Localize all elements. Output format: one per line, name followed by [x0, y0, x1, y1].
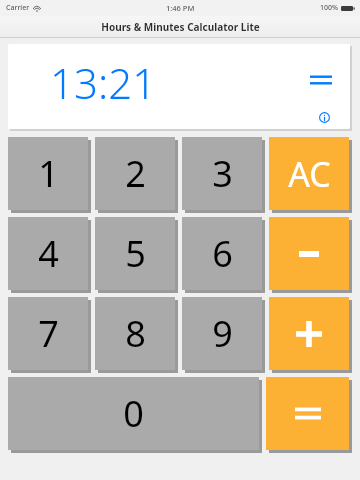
staticText: AC — [288, 151, 331, 197]
staticText: 1:46 PM — [166, 3, 195, 13]
staticText: 0 — [123, 389, 144, 438]
staticText: 9 — [212, 309, 233, 358]
button[interactable]: 2 — [95, 137, 178, 213]
staticText: 13:21 — [50, 54, 157, 111]
button[interactable]: 7 — [8, 297, 91, 373]
button[interactable]: 8 — [95, 297, 178, 373]
staticText: 7 — [38, 309, 59, 358]
button[interactable]: 4 — [8, 217, 91, 293]
staticText: Carrier — [6, 3, 30, 13]
button[interactable] — [269, 217, 352, 293]
button[interactable] — [266, 377, 352, 453]
button[interactable]: 6 — [182, 217, 265, 293]
button[interactable]: 9 — [182, 297, 265, 373]
button[interactable]: 5 — [95, 217, 178, 293]
staticText: 4 — [38, 229, 59, 278]
staticText: 1 — [38, 149, 59, 198]
button[interactable]: Equals — [308, 69, 334, 91]
button[interactable]: 3 — [182, 137, 265, 213]
staticText: 3 — [212, 149, 233, 198]
button[interactable]: Info — [316, 109, 332, 125]
staticText: 6 — [212, 229, 233, 278]
staticText: 100% — [320, 3, 338, 13]
staticText: 2 — [125, 149, 146, 198]
staticText: 5 — [125, 229, 146, 278]
staticText: 8 — [125, 309, 146, 358]
button[interactable] — [269, 297, 352, 373]
button[interactable]: 1 — [8, 137, 91, 213]
staticText: Hours & Minutes Calculator Lite — [101, 20, 260, 34]
button[interactable]: AC — [269, 137, 352, 213]
button[interactable]: 0 — [8, 377, 262, 453]
